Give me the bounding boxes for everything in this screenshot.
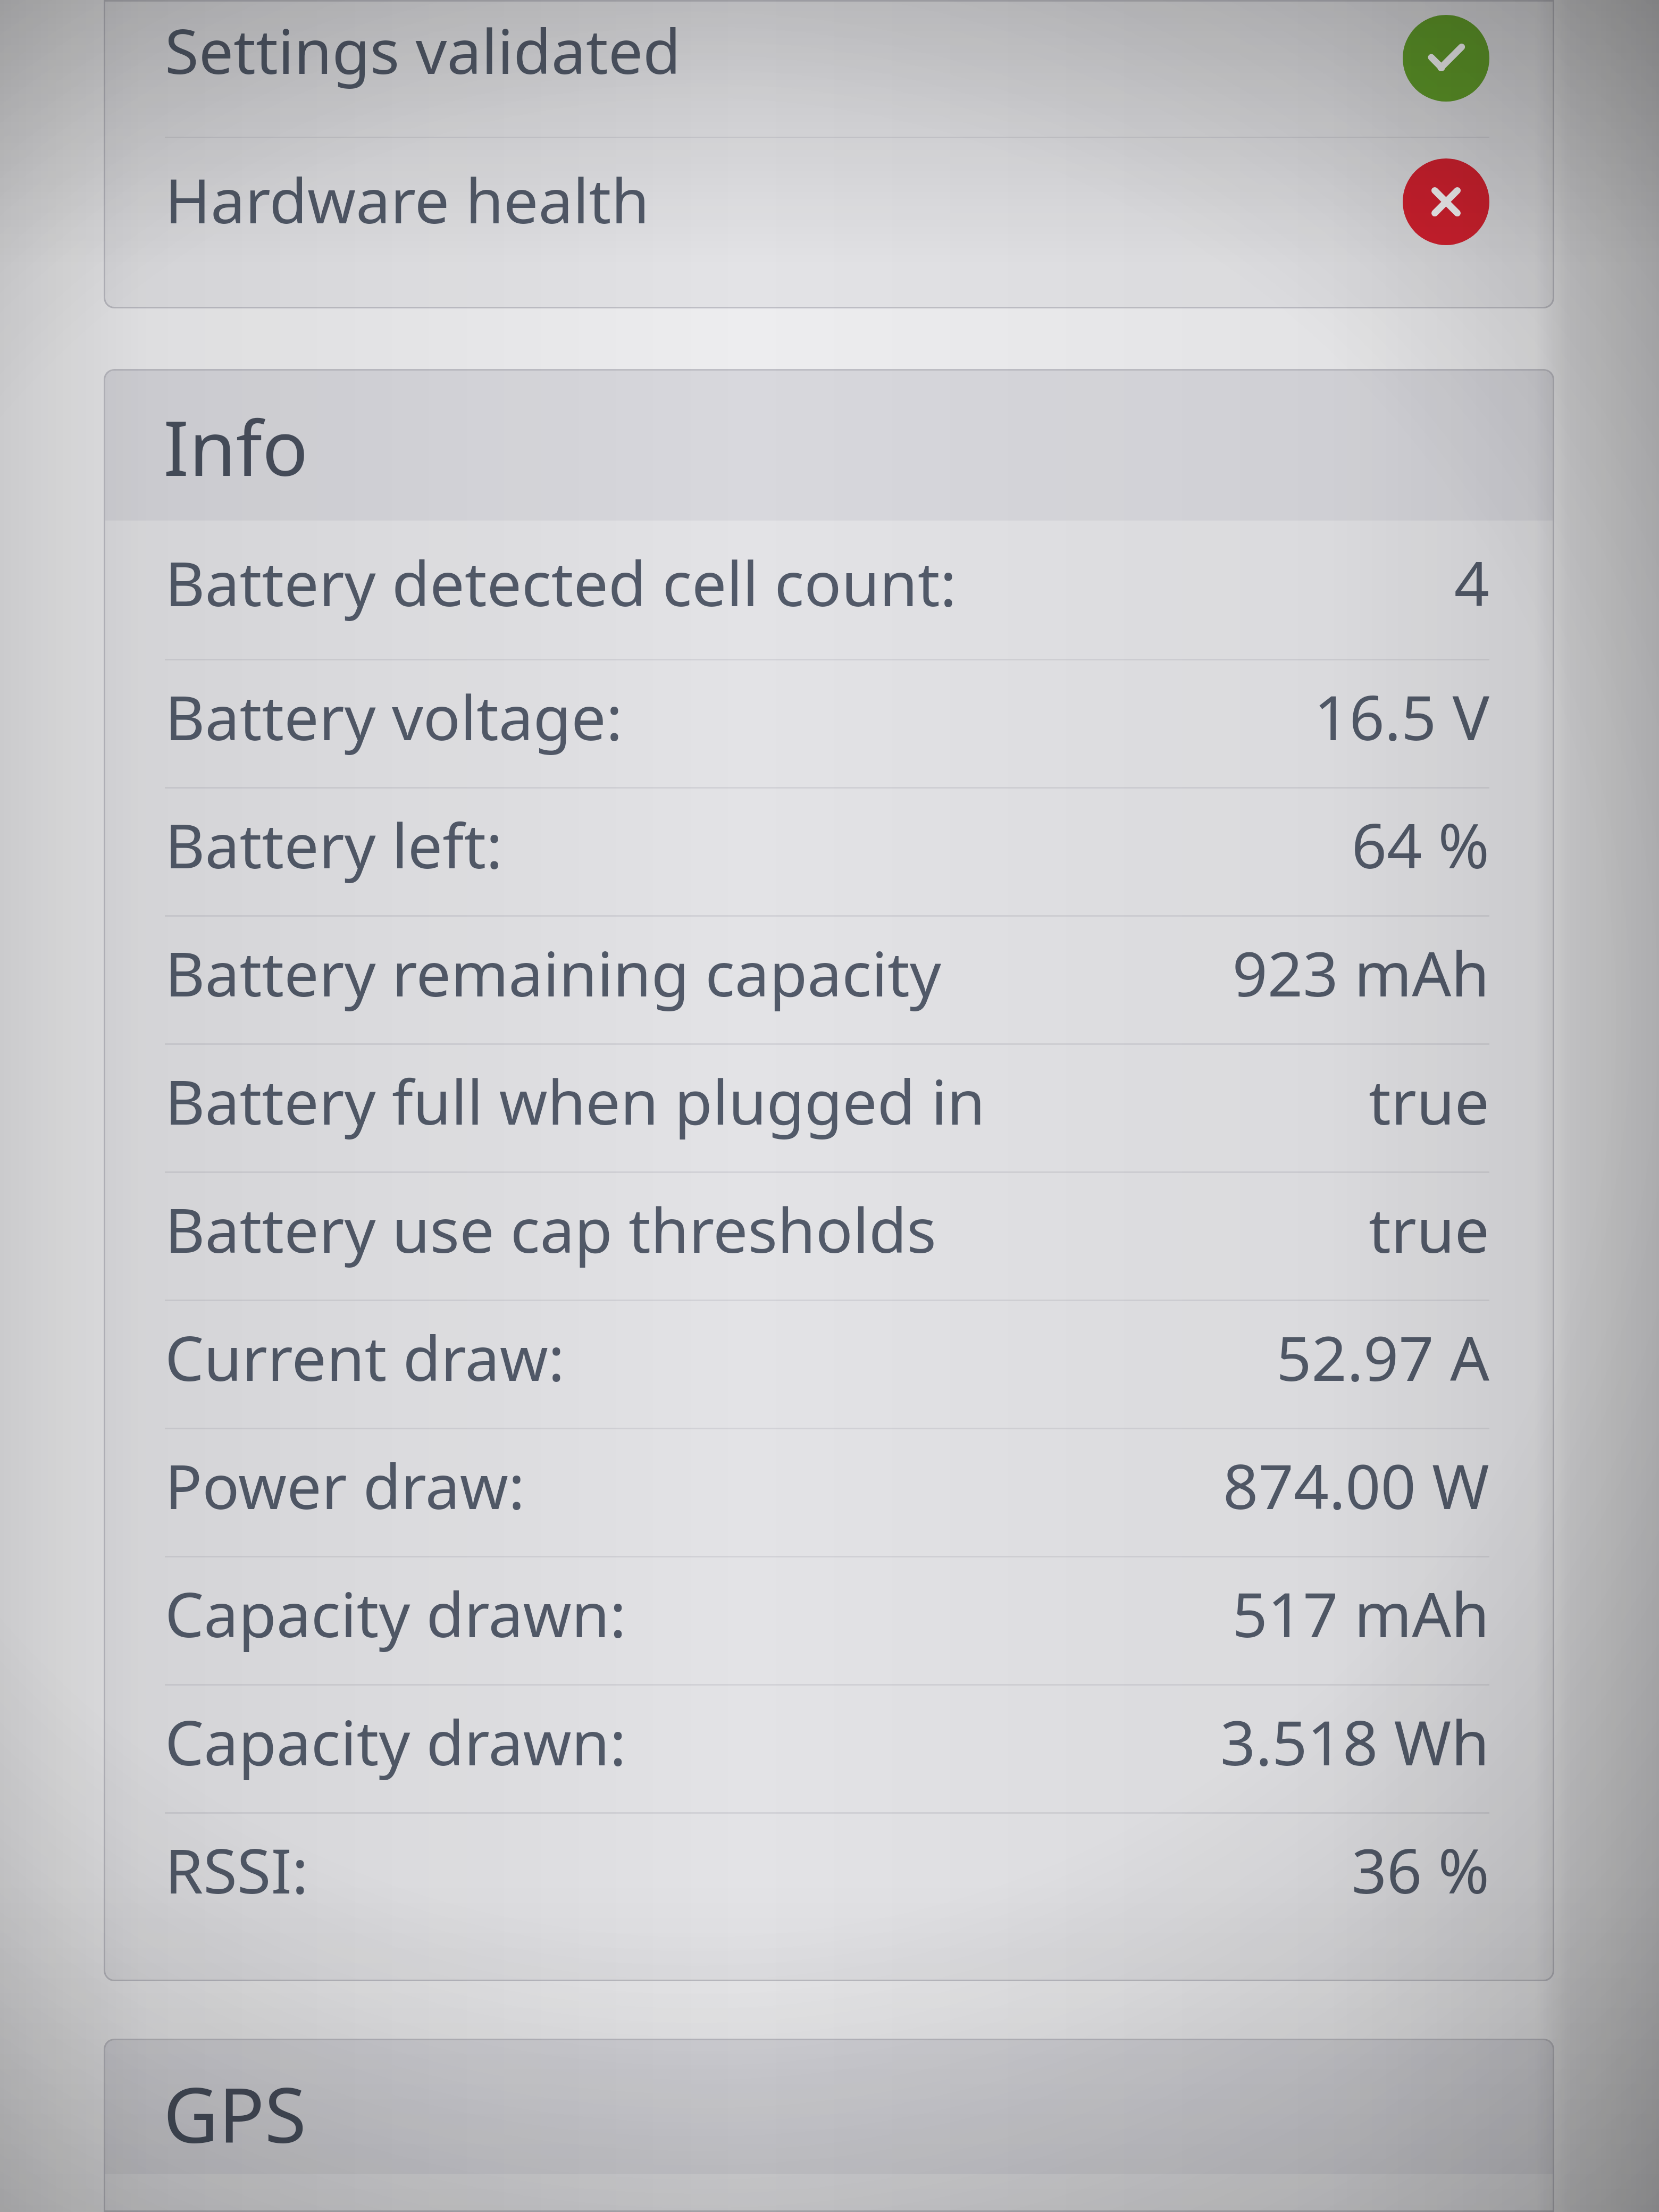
button[interactable]: Settings validated (104, 0, 1554, 137)
staticText: GPS (163, 2062, 307, 2165)
staticText: 517 mAh (1232, 1571, 1489, 1655)
staticText: Info (163, 395, 308, 498)
button[interactable]: Battery remaining capacity (104, 917, 1554, 1043)
staticText: true (1369, 1187, 1489, 1271)
other: Status ok (1403, 15, 1489, 102)
button[interactable]: Current draw: (104, 1301, 1554, 1428)
staticText: Capacity drawn: (165, 1699, 626, 1783)
staticText: Battery use cap thresholds (165, 1187, 936, 1271)
button[interactable]: Battery full when plugged in (104, 1045, 1554, 1171)
button[interactable]: Battery voltage: (104, 660, 1554, 787)
staticText: 923 mAh (1232, 931, 1489, 1015)
staticText: true (1369, 1059, 1489, 1143)
button[interactable]: Battery use cap thresholds (104, 1173, 1554, 1300)
staticText: 64 % (1351, 802, 1489, 886)
button[interactable]: Capacity drawn: (104, 1686, 1554, 1812)
other: Status failed (1403, 158, 1489, 245)
staticText: Current draw: (165, 1315, 565, 1399)
button[interactable]: Power draw: (104, 1429, 1554, 1556)
button[interactable]: Hardware health (104, 138, 1554, 265)
staticText: Settings validated (165, 8, 681, 92)
staticText: 52.97 A (1276, 1315, 1489, 1399)
button[interactable]: RSSI: (104, 1814, 1554, 1940)
staticText: Hardware health (165, 157, 650, 241)
staticText: Battery voltage: (165, 674, 623, 758)
staticText: Battery full when plugged in (165, 1059, 985, 1143)
staticText: 4 (1454, 540, 1489, 624)
staticText: RSSI: (165, 1828, 308, 1912)
staticText: 3.518 Wh (1220, 1699, 1489, 1783)
staticText: Capacity drawn: (165, 1571, 626, 1655)
staticText: 16.5 V (1314, 674, 1489, 758)
staticText: Battery detected cell count: (165, 540, 957, 624)
button[interactable]: Capacity drawn: (104, 1557, 1554, 1684)
button[interactable]: Battery left: (104, 789, 1554, 915)
staticText: Battery left: (165, 802, 503, 886)
button[interactable]: Battery detected cell count: (104, 521, 1554, 659)
staticText: Power draw: (165, 1443, 525, 1527)
staticText: 36 % (1351, 1828, 1489, 1912)
staticText: 874.00 W (1223, 1443, 1489, 1527)
staticText: Battery remaining capacity (165, 931, 941, 1015)
